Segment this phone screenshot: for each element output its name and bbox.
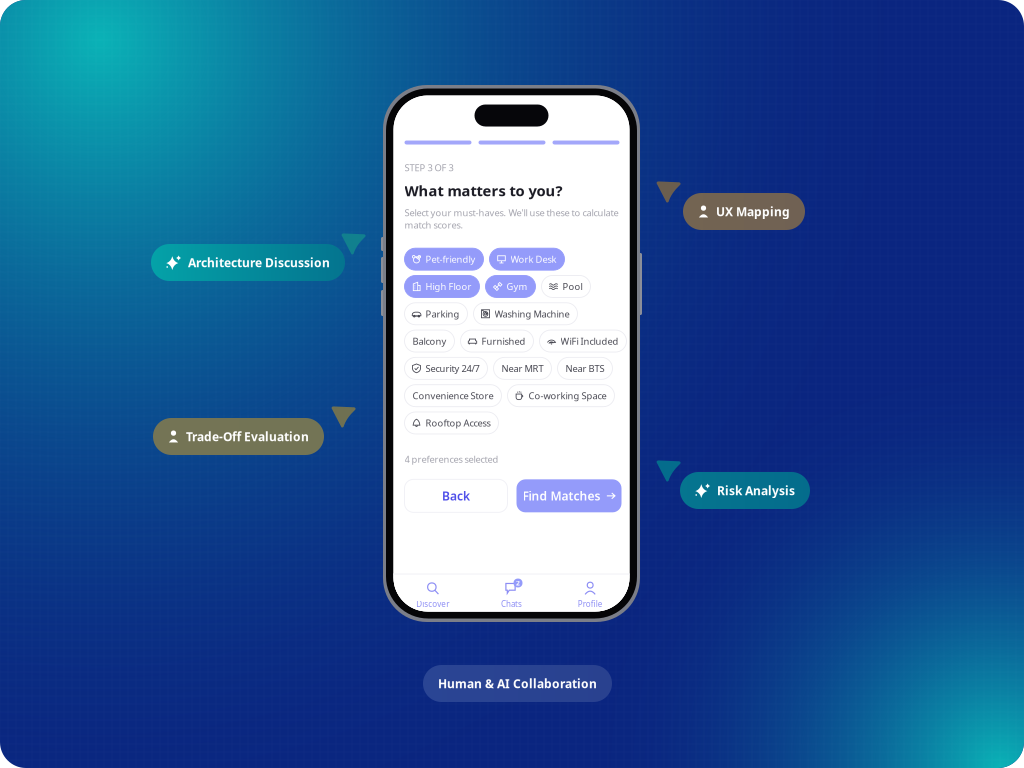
button[interactable]: Rooftop Access <box>404 412 498 434</box>
staticText: Balcony <box>412 335 446 347</box>
staticText: Pet-friendly <box>425 253 475 265</box>
staticText: Risk Analysis <box>717 482 795 498</box>
button[interactable]: Parking <box>404 303 467 325</box>
button[interactable]: Furnished <box>460 330 533 352</box>
staticText: 2 <box>516 579 520 587</box>
staticText: Discover <box>416 598 449 609</box>
button[interactable]: Convenience Store <box>404 385 501 407</box>
staticText: Convenience Store <box>412 389 493 402</box>
button[interactable]: Near MRT <box>493 357 551 379</box>
staticText: Chats <box>501 598 522 609</box>
button[interactable]: Near BTS <box>557 357 612 379</box>
staticText: High Floor <box>425 280 471 293</box>
staticText: Profile <box>578 598 603 609</box>
staticText: STEP 3 OF 3 <box>404 161 453 174</box>
button[interactable]: Risk Analysis <box>680 472 810 509</box>
button[interactable]: Discover <box>393 581 472 609</box>
button[interactable]: Gym <box>485 275 535 297</box>
staticText: Furnished <box>481 335 525 347</box>
button[interactable]: Balcony <box>404 330 454 352</box>
button[interactable]: Back <box>404 479 507 512</box>
staticText: Work Desk <box>510 253 556 265</box>
button[interactable]: Pool <box>541 275 590 297</box>
staticText: Pool <box>562 280 582 293</box>
button[interactable]: Pet-friendly <box>404 248 483 270</box>
button[interactable]: Co-working Space <box>507 385 614 407</box>
staticText: Security 24/7 <box>425 362 479 375</box>
button[interactable]: Washing Machine <box>473 303 577 325</box>
staticText: Trade-Off Evaluation <box>186 428 309 444</box>
staticText: Parking <box>425 308 459 320</box>
staticText: Near MRT <box>501 362 543 375</box>
staticText: Architecture Discussion <box>188 254 330 270</box>
staticText: Back <box>442 488 470 504</box>
button[interactable]: Profile <box>551 581 629 609</box>
button[interactable]: UX Mapping <box>683 193 805 230</box>
button[interactable]: WiFi Included <box>539 330 626 352</box>
button[interactable]: Human & AI Collaboration <box>423 665 612 702</box>
button[interactable]: Work Desk <box>489 248 564 270</box>
staticText: Near BTS <box>565 362 604 375</box>
staticText: Human & AI Collaboration <box>438 675 597 691</box>
staticText: 4 preferences selected <box>404 453 498 465</box>
staticText: Select your must-haves. We'll use these … <box>404 206 618 231</box>
staticText: UX Mapping <box>716 203 790 219</box>
staticText: Washing Machine <box>494 308 569 320</box>
staticText: What matters to you? <box>404 181 562 200</box>
staticText: Gym <box>506 280 527 293</box>
button[interactable]: Security 24/7 <box>404 357 487 379</box>
staticText: Co-working Space <box>528 389 606 402</box>
button[interactable]: Architecture Discussion <box>151 244 345 281</box>
button[interactable]: Find Matches <box>516 479 621 512</box>
staticText: Find Matches <box>522 488 600 504</box>
button[interactable]: Trade-Off Evaluation <box>153 418 324 455</box>
button[interactable]: 2 <box>472 581 551 609</box>
staticText: WiFi Included <box>560 335 618 347</box>
staticText: Rooftop Access <box>425 417 490 429</box>
button[interactable]: High Floor <box>404 275 479 297</box>
